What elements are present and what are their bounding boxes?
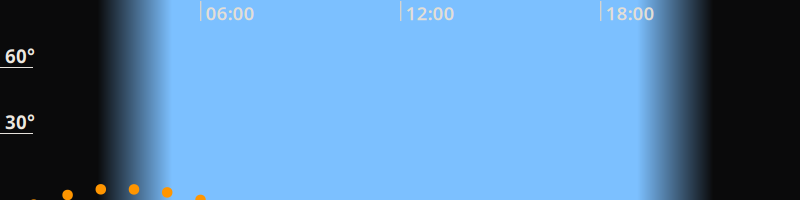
staticText: 30° [5,110,35,134]
staticText: 06:00 [205,0,254,25]
staticText: 60° [5,44,35,68]
staticText: 18:00 [605,0,654,25]
staticText: 12:00 [405,0,454,25]
